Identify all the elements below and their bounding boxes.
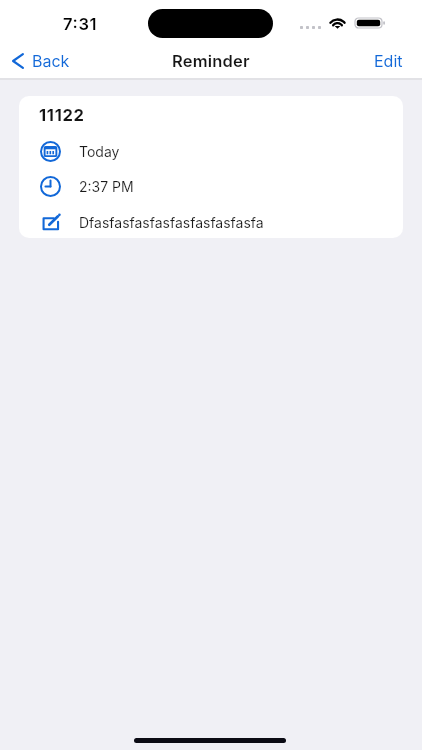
staticText: Today: [79, 143, 120, 160]
other: Cellular signal: [300, 26, 321, 29]
button[interactable]: Back: [6, 48, 76, 73]
button[interactable]: Date: [19, 134, 403, 168]
staticText: Edit: [374, 51, 403, 70]
staticText: 11122: [39, 105, 85, 125]
button[interactable]: Edit: [368, 48, 409, 73]
staticText: 2:37 PM: [79, 178, 134, 195]
button[interactable]: Time: [19, 169, 403, 203]
other: Battery: [355, 18, 385, 28]
other: Wi-Fi: [327, 16, 348, 29]
staticText: 7:31: [63, 14, 98, 34]
other: Time: [40, 176, 61, 197]
staticText: Back: [32, 51, 70, 70]
staticText: Dfasfasfasfasfasfasfasfasfa: [79, 214, 264, 231]
other: Date: [40, 141, 61, 162]
other: Note: [40, 212, 61, 233]
staticText: Reminder: [172, 51, 250, 71]
button[interactable]: Note: [19, 205, 403, 238]
